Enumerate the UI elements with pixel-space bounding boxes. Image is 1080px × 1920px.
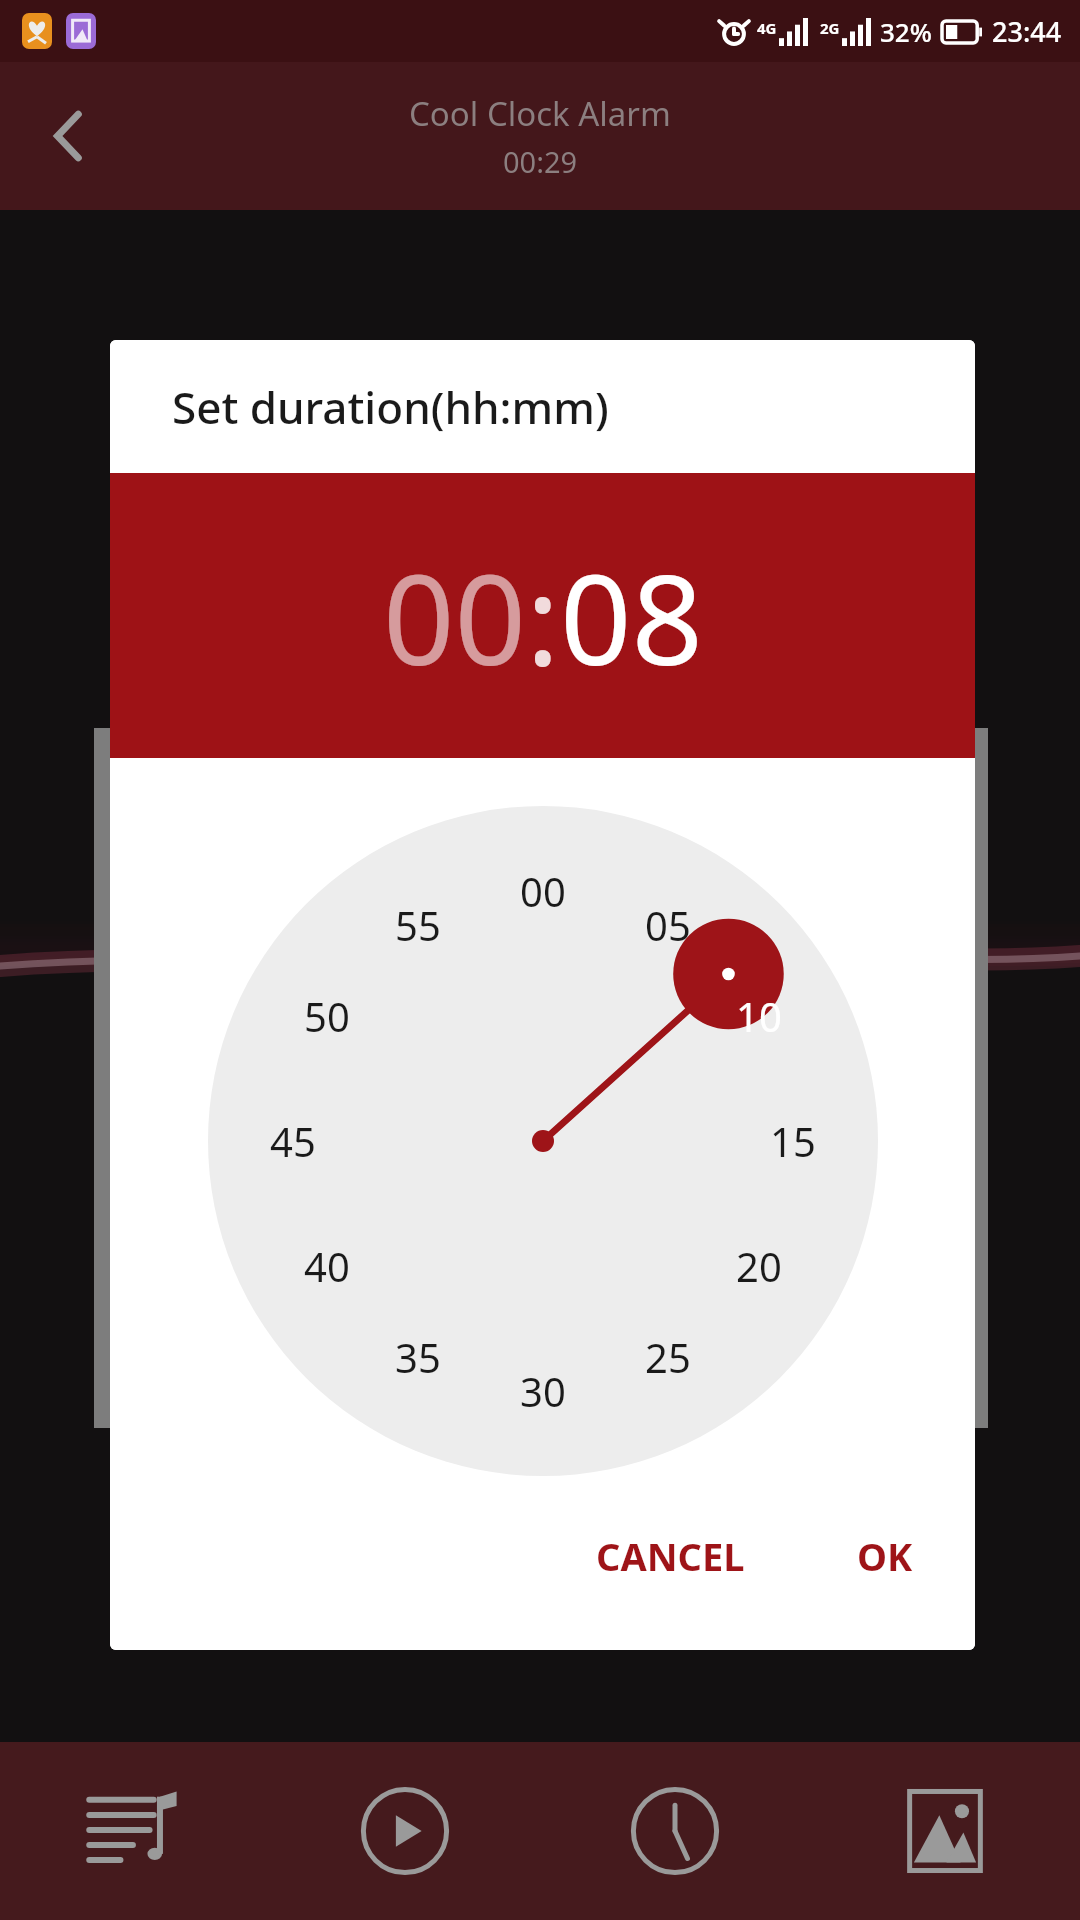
- staticText: 00:29: [503, 142, 578, 181]
- button[interactable]: OK: [835, 1514, 935, 1598]
- staticText: 35: [395, 1330, 441, 1384]
- staticText: 15: [770, 1114, 816, 1168]
- staticText: 4G: [757, 18, 777, 38]
- button[interactable]: CANCEL: [574, 1514, 767, 1598]
- staticText: 25: [645, 1330, 691, 1384]
- button[interactable]: 00: [383, 531, 526, 701]
- staticText: OK: [857, 1530, 913, 1582]
- button[interactable]: 00: [208, 806, 878, 1476]
- staticText: 00: [383, 531, 526, 701]
- staticText: CANCEL: [596, 1530, 745, 1582]
- staticText: Set duration(hh:mm): [172, 377, 609, 437]
- button[interactable]: Clock: [540, 1742, 810, 1920]
- staticText: 32%: [880, 14, 932, 49]
- staticText: 40: [304, 1239, 350, 1293]
- staticText: 05: [645, 898, 691, 952]
- staticText: 50: [304, 989, 350, 1043]
- staticText: Cool Clock Alarm: [409, 91, 671, 136]
- staticText: 30: [520, 1364, 566, 1418]
- staticText: 08: [560, 531, 703, 701]
- staticText: 55: [395, 898, 441, 952]
- staticText: :: [526, 531, 560, 701]
- staticText: 10: [736, 989, 782, 1043]
- button[interactable]: Images: [810, 1742, 1080, 1920]
- button[interactable]: 08: [560, 531, 703, 701]
- staticText: 23:44: [992, 13, 1062, 50]
- staticText: 00: [520, 864, 566, 918]
- button[interactable]: Play: [270, 1742, 540, 1920]
- button[interactable]: Playlist: [0, 1742, 270, 1920]
- staticText: 20: [736, 1239, 782, 1293]
- staticText: 45: [270, 1114, 316, 1168]
- staticText: 2G: [820, 18, 840, 38]
- button[interactable]: Back: [24, 90, 116, 182]
